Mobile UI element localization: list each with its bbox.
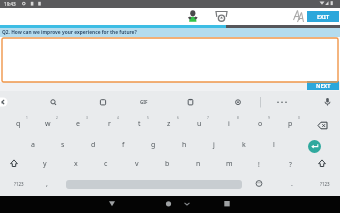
button[interactable] (123, 155, 151, 176)
staticText: g (151, 140, 156, 150)
button[interactable] (176, 196, 198, 213)
staticText: p (288, 119, 293, 129)
button[interactable] (213, 196, 241, 213)
staticText: a (31, 140, 35, 150)
button[interactable] (79, 134, 107, 155)
staticText: 9 (268, 116, 270, 120)
button[interactable] (248, 175, 270, 195)
staticText: Q2. How can we improve your experience f… (2, 29, 137, 36)
staticText: ? (289, 160, 292, 169)
button[interactable] (19, 134, 47, 155)
button[interactable] (215, 113, 243, 134)
staticText: j (213, 140, 215, 150)
staticText: s (61, 140, 65, 150)
button[interactable]: NEXT (307, 81, 339, 90)
button[interactable] (276, 113, 304, 134)
staticText: ! (258, 160, 260, 169)
staticText: . (291, 179, 293, 189)
staticText: NEXT (316, 82, 331, 89)
button[interactable] (260, 134, 288, 155)
staticText: v (135, 159, 139, 169)
staticText: 19:43 (4, 1, 16, 7)
button[interactable] (215, 155, 243, 176)
button[interactable] (170, 134, 198, 155)
staticText: r (108, 119, 111, 129)
staticText: y (43, 159, 47, 169)
staticText: z (167, 119, 171, 129)
button[interactable] (31, 155, 59, 176)
button[interactable] (125, 113, 153, 134)
button[interactable] (2, 38, 338, 82)
staticText: 0 (298, 116, 300, 120)
button[interactable] (95, 113, 123, 134)
staticText: c (104, 159, 108, 169)
button[interactable] (308, 155, 338, 176)
button[interactable] (246, 113, 274, 134)
button[interactable]: EXIT (307, 11, 339, 22)
staticText: h (182, 140, 187, 150)
button[interactable] (308, 113, 338, 134)
staticText: l (273, 140, 275, 150)
button[interactable] (281, 175, 303, 195)
button[interactable] (64, 113, 92, 134)
button[interactable] (62, 155, 90, 176)
staticText: 7 (207, 116, 209, 120)
button[interactable] (95, 93, 111, 112)
button[interactable] (230, 93, 246, 112)
button[interactable] (139, 134, 167, 155)
button[interactable] (230, 134, 258, 155)
button[interactable] (155, 113, 183, 134)
button[interactable] (98, 196, 126, 213)
button[interactable] (185, 113, 213, 134)
staticText: q (16, 119, 21, 129)
staticText: 4 (117, 116, 119, 120)
button[interactable] (153, 155, 181, 176)
staticText: , (46, 179, 48, 189)
button[interactable] (276, 155, 304, 176)
button[interactable] (183, 93, 199, 112)
button[interactable] (109, 134, 137, 155)
staticText: u (197, 119, 202, 129)
button[interactable] (34, 113, 62, 134)
button[interactable] (4, 175, 34, 195)
button[interactable] (136, 93, 152, 112)
button[interactable] (45, 93, 61, 112)
staticText: 6 (177, 116, 179, 120)
staticText: 1 (26, 116, 28, 120)
button[interactable] (0, 93, 11, 112)
staticText: t (138, 119, 141, 129)
staticText: 8 (237, 116, 239, 120)
button[interactable] (36, 175, 58, 195)
staticText: w (45, 119, 51, 129)
button[interactable] (200, 134, 228, 155)
staticText: < (1, 99, 5, 106)
staticText: e (76, 119, 80, 129)
button[interactable] (308, 140, 321, 153)
staticText: ?123 (320, 181, 330, 187)
button[interactable] (310, 175, 338, 195)
staticText: ?123 (14, 181, 24, 187)
button[interactable] (2, 155, 28, 176)
staticText: n (196, 159, 201, 169)
staticText: b (165, 159, 170, 169)
staticText: EXIT (317, 13, 330, 20)
staticText: d (91, 140, 96, 150)
staticText: 5 (147, 116, 149, 120)
button[interactable] (92, 155, 120, 176)
button[interactable] (245, 155, 273, 176)
button[interactable] (274, 93, 290, 112)
button[interactable] (320, 93, 336, 112)
button[interactable] (4, 113, 32, 134)
button[interactable] (154, 196, 182, 213)
staticText: o (258, 119, 263, 129)
button[interactable] (184, 155, 212, 176)
button[interactable] (49, 134, 77, 155)
staticText: m (226, 159, 233, 169)
staticText: k (242, 140, 246, 150)
staticText: f (122, 140, 125, 150)
staticText: GIF (140, 99, 148, 105)
staticText: 2 (56, 116, 58, 120)
staticText: 3 (86, 116, 88, 120)
staticText: i (228, 119, 230, 129)
